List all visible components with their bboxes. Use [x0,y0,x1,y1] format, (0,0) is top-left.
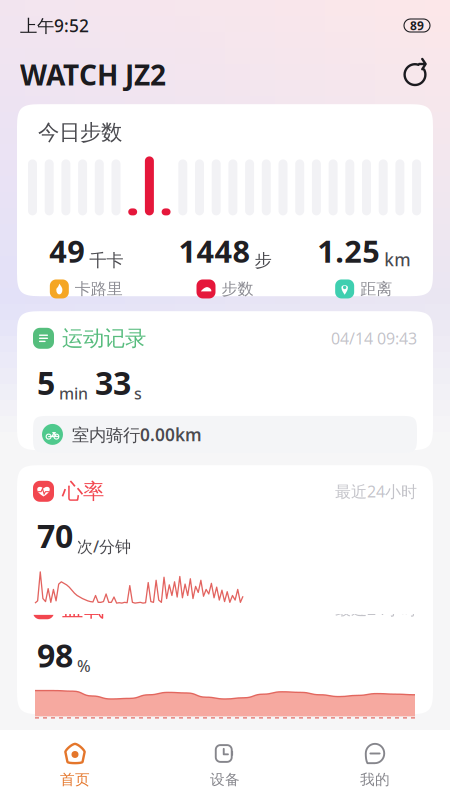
staticText: 距离 [360,279,392,299]
staticText: 我的 [360,770,390,788]
staticText: 次/分钟 [77,536,131,557]
staticText: 心率 [62,478,104,504]
staticText: 04/14 09:43 [331,328,417,349]
staticText: 49 [49,230,85,271]
staticText: min [59,383,88,404]
staticText: 步 [254,250,271,271]
staticText: WATCH JZ2 [20,56,166,93]
staticText: 设备 [210,770,240,788]
button[interactable]: 设备 [150,730,300,800]
button[interactable]: 同步 [398,58,432,92]
staticText: 首页 [60,770,90,788]
staticText: 最近24小时 [335,481,417,502]
staticText: 33 [95,361,131,404]
staticText: 血氧 [62,596,104,622]
staticText: 1.25 [317,230,380,271]
button[interactable]: 首页 [0,730,150,800]
staticText: 89 [410,17,424,33]
staticText: 上午9:52 [20,14,89,37]
staticText: 98 [37,634,73,676]
staticText: km [384,248,410,271]
button[interactable]: 室内骑行0.00km [33,416,417,453]
staticText: 步数 [221,279,253,299]
staticText: s [134,383,142,404]
staticText: 卡路里 [75,279,123,299]
staticText: 5 [37,361,55,404]
staticText: 运动记录 [62,325,146,351]
staticText: 千卡 [89,250,123,271]
staticText: 70 [37,514,73,557]
button[interactable]: 我的 [300,730,450,800]
staticText: 1448 [178,230,250,271]
staticText: 室内骑行0.00km [72,423,202,446]
staticText: 最近24小时 [335,598,417,619]
staticText: 今日步数 [38,119,122,145]
staticText: % [77,655,91,676]
